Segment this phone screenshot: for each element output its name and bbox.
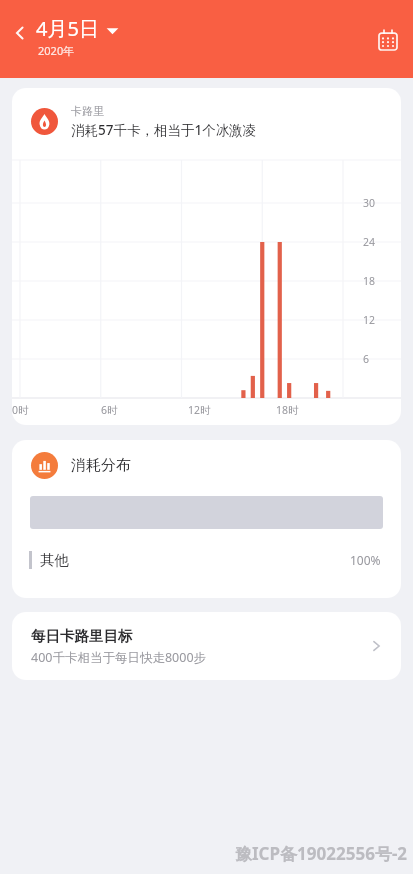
staticText: 消耗分布 xyxy=(71,456,131,475)
staticText: 100% xyxy=(350,552,381,568)
staticText: 18 xyxy=(363,274,376,288)
staticText: 30 xyxy=(363,196,376,210)
staticText: 24 xyxy=(363,235,376,249)
staticText: 6时 xyxy=(101,403,118,417)
staticText: 2020年 xyxy=(38,43,75,58)
button[interactable]: 消耗分布 xyxy=(12,440,401,598)
staticText: 每日卡路里目标 xyxy=(31,627,133,645)
button[interactable]: Calendar xyxy=(370,22,406,58)
staticText: 12 xyxy=(363,313,376,327)
staticText: 18时 xyxy=(276,403,299,417)
staticText: 消耗57千卡，相当于1个冰激凌 xyxy=(71,121,257,139)
staticText: 400千卡相当于每日快走8000步 xyxy=(31,649,207,666)
staticText: 12时 xyxy=(188,403,211,417)
staticText: 4月5日 xyxy=(36,15,99,42)
staticText: 豫ICP备19022556号-2 xyxy=(235,842,408,865)
staticText: 6 xyxy=(363,352,370,366)
staticText: 0时 xyxy=(12,403,29,417)
staticText: 其他 xyxy=(40,551,69,569)
button[interactable]: 每日卡路里目标 xyxy=(12,612,401,680)
button[interactable]: 4月5日 xyxy=(36,15,119,42)
button[interactable]: Back xyxy=(4,17,36,49)
button[interactable]: 卡路里 xyxy=(12,88,401,425)
staticText: 卡路里 xyxy=(71,104,104,118)
